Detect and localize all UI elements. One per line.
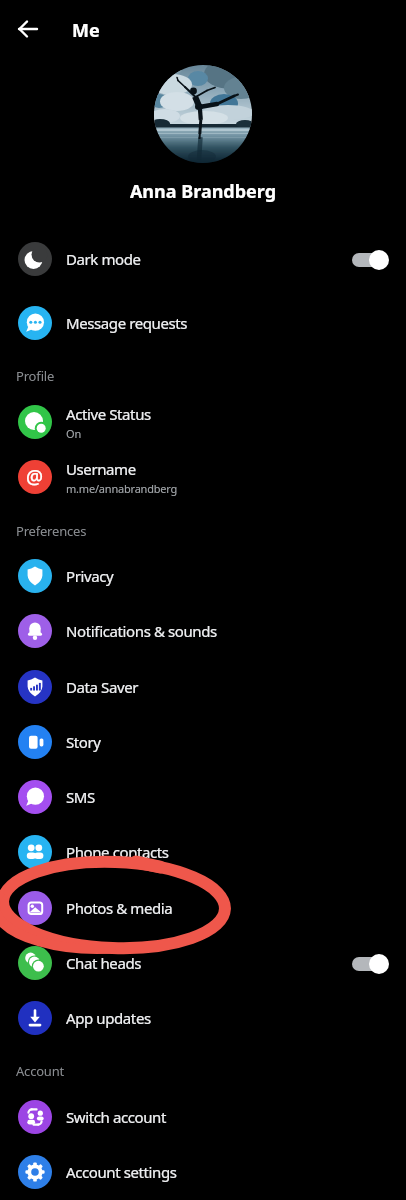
staticText: Privacy	[66, 566, 114, 586]
button[interactable]	[14, 15, 42, 43]
button[interactable]: Message requests	[0, 296, 406, 350]
button[interactable]: Active Status	[0, 395, 406, 449]
button[interactable]: Account settings	[0, 1145, 406, 1199]
button[interactable]: Chat heads	[0, 936, 406, 990]
staticText: Account	[16, 1062, 65, 1080]
button[interactable]: Dark mode	[0, 232, 406, 286]
button[interactable]: Story	[0, 715, 406, 769]
staticText: Data Saver	[66, 677, 139, 697]
button[interactable]: Phone contacts	[0, 825, 406, 879]
button[interactable]: Notifications & sounds	[0, 604, 406, 658]
staticText: @	[26, 464, 44, 490]
button[interactable]: App updates	[0, 991, 406, 1045]
staticText: Switch account	[66, 1107, 166, 1127]
button[interactable]: @	[0, 450, 406, 504]
staticText: Dark mode	[66, 249, 141, 269]
staticText: App updates	[66, 1008, 151, 1028]
button[interactable]: Switch account	[0, 1090, 406, 1144]
button[interactable]: Data Saver	[0, 660, 406, 714]
button[interactable]: Photos & media	[0, 881, 406, 935]
staticText: Profile	[16, 367, 55, 385]
staticText: Preferences	[16, 522, 87, 540]
staticText: Account settings	[66, 1162, 177, 1182]
staticText: m.me/annabrandberg	[66, 481, 178, 496]
staticText: Photos & media	[66, 898, 173, 918]
staticText: Anna Brandberg	[0, 179, 406, 204]
staticText: Username	[66, 459, 136, 479]
staticText: Chat heads	[66, 953, 142, 973]
button[interactable]: SMS	[0, 770, 406, 824]
staticText: SMS	[66, 787, 95, 807]
staticText: Active Status	[66, 404, 151, 424]
staticText: Story	[66, 732, 101, 752]
staticText: Me	[72, 18, 100, 43]
staticText: Notifications & sounds	[66, 621, 217, 641]
staticText: Message requests	[66, 313, 188, 333]
button[interactable]	[154, 65, 252, 163]
staticText: Phone contacts	[66, 842, 169, 862]
button[interactable]	[352, 953, 389, 974]
button[interactable]	[352, 249, 389, 270]
button[interactable]: Privacy	[0, 549, 406, 603]
staticText: On	[66, 426, 81, 441]
